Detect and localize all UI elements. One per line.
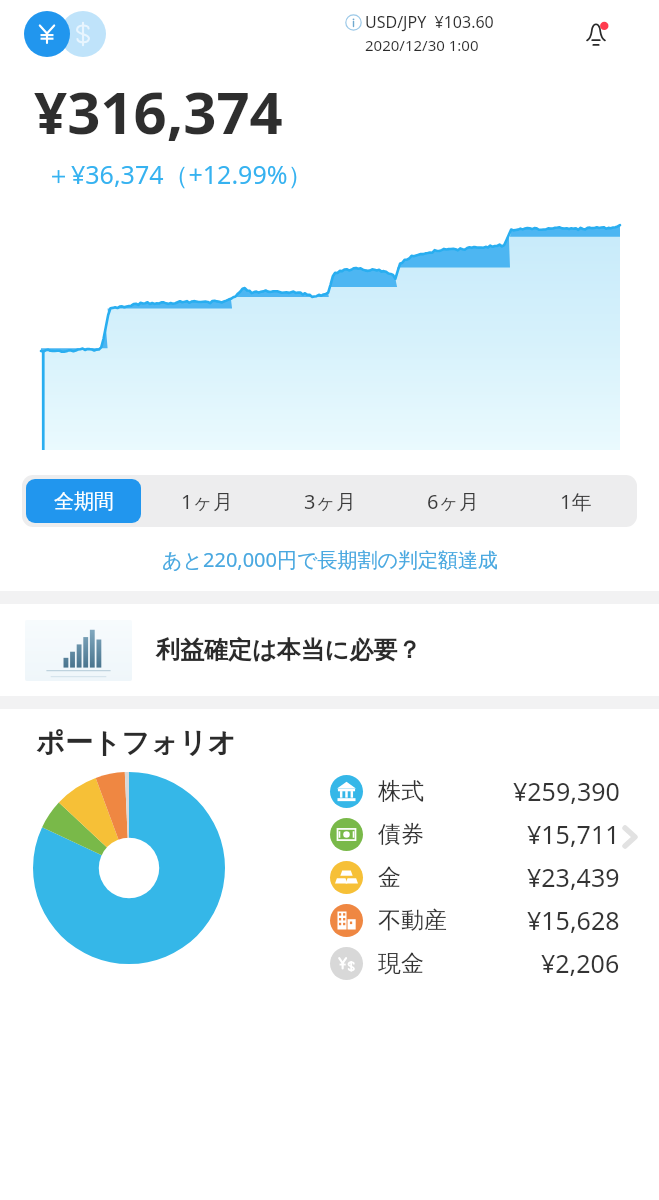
button[interactable]: 3ヶ月 — [272, 479, 387, 523]
staticText: USD/JPY ¥103.60 — [365, 11, 494, 33]
staticText: 1ヶ月 — [181, 488, 233, 515]
staticText: 利益確定は本当に必要？ — [156, 635, 422, 665]
button[interactable]: Notifications — [578, 16, 618, 56]
staticText: ¥259,390 — [513, 774, 620, 808]
staticText: ¥23,439 — [527, 860, 620, 894]
button[interactable]: USD/JPY ¥103.60 — [345, 11, 494, 55]
staticText: 債券 — [378, 820, 424, 849]
staticText: ポートフォリオ — [36, 725, 236, 760]
staticText: 全期間 — [54, 489, 114, 514]
staticText: 3ヶ月 — [304, 488, 356, 515]
button[interactable]: あと220,000円で長期割の判定額達成 — [0, 546, 659, 573]
button[interactable]: ポートフォリオ — [0, 709, 659, 974]
staticText: ¥15,711 — [527, 817, 620, 851]
staticText: 2020/12/30 1:00 — [365, 35, 479, 55]
staticText: 現金 — [378, 949, 424, 978]
staticText: ＋¥36,374（+12.99%） — [46, 157, 313, 191]
button[interactable]: 1ヶ月 — [149, 479, 264, 523]
staticText: 6ヶ月 — [427, 488, 479, 515]
button[interactable]: 1年 — [518, 479, 633, 523]
staticText: 株式 — [378, 777, 424, 806]
button[interactable]: Switch currency — [22, 10, 130, 58]
staticText: 不動産 — [378, 906, 447, 935]
button[interactable]: 全期間 — [26, 479, 141, 523]
staticText: ¥316,374 — [34, 72, 283, 151]
other: Open portfolio — [612, 819, 648, 855]
button[interactable]: 利益確定は本当に必要？ — [0, 604, 659, 696]
button[interactable]: 6ヶ月 — [395, 479, 510, 523]
staticText: 金 — [378, 863, 401, 892]
staticText: ¥2,206 — [541, 946, 620, 980]
staticText: ¥15,628 — [527, 903, 620, 937]
staticText: あと220,000円で長期割の判定額達成 — [162, 546, 498, 573]
staticText: 1年 — [560, 488, 592, 515]
